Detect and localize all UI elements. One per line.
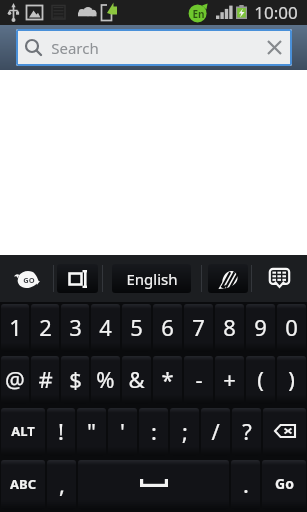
staticText: ! [58, 416, 64, 446]
staticText: ' [120, 416, 125, 446]
button[interactable]: ' [108, 408, 137, 456]
button[interactable]: ) [277, 356, 306, 404]
staticText: 9 [254, 312, 267, 342]
staticText: 7 [192, 312, 205, 342]
button[interactable]: + [215, 356, 244, 404]
staticText: - [195, 364, 203, 394]
button[interactable]: GO Keyboard [0, 255, 53, 302]
button[interactable]: 9 [246, 304, 275, 352]
button[interactable]: @ [1, 356, 29, 404]
button[interactable]: Go [262, 460, 306, 510]
button[interactable]: 8 [215, 304, 244, 352]
staticText: % [96, 364, 115, 394]
button[interactable]: ! [47, 408, 75, 456]
button[interactable]: - [184, 356, 213, 404]
staticText: + [223, 364, 236, 394]
button[interactable]: & [122, 356, 151, 404]
button[interactable]: 2 [31, 304, 59, 352]
staticText: , [59, 469, 65, 499]
button[interactable]: English [112, 264, 191, 293]
staticText: ALT [11, 422, 35, 440]
staticText: Go [275, 474, 294, 493]
button[interactable]: Search [16, 29, 292, 66]
staticText: 5 [130, 312, 143, 342]
button[interactable]: Backspace [263, 408, 306, 456]
button[interactable]: Clear [256, 29, 292, 66]
button[interactable]: 1 [1, 304, 29, 352]
button[interactable]: . [231, 460, 260, 510]
staticText: ) [288, 364, 295, 394]
staticText: 2 [39, 312, 52, 342]
button[interactable]: ? [232, 408, 261, 456]
button[interactable]: : [139, 408, 168, 456]
staticText: . [243, 469, 249, 499]
button[interactable]: * [153, 356, 182, 404]
staticText: @ [5, 364, 25, 394]
button[interactable]: ABC [1, 460, 45, 510]
button[interactable]: Space [78, 460, 229, 510]
staticText: & [128, 364, 145, 394]
staticText: " [87, 416, 96, 446]
staticText: ? [242, 416, 252, 446]
button[interactable]: Handwriting [208, 264, 248, 293]
button[interactable]: / [201, 408, 230, 456]
staticText: / [211, 416, 220, 446]
staticText: En [192, 7, 205, 21]
staticText: * [161, 364, 174, 394]
button[interactable]: 6 [153, 304, 182, 352]
button[interactable]: 0 [277, 304, 306, 352]
button[interactable]: ( [246, 356, 275, 404]
staticText: GO [23, 275, 35, 285]
staticText: $ [69, 364, 82, 394]
staticText: # [38, 364, 53, 394]
staticText: Search [51, 38, 99, 58]
button[interactable]: $ [61, 356, 89, 404]
button[interactable]: , [47, 460, 76, 510]
button[interactable]: Split keyboard [57, 264, 98, 293]
staticText: 10:00 [254, 1, 298, 24]
button[interactable]: ALT [1, 408, 45, 456]
staticText: : [151, 416, 157, 446]
staticText: 8 [223, 312, 236, 342]
button[interactable]: % [91, 356, 120, 404]
button[interactable]: " [77, 408, 106, 456]
button[interactable]: ; [170, 408, 199, 456]
staticText: ( [257, 364, 264, 394]
button[interactable]: Hide keyboard [252, 255, 307, 302]
staticText: English [126, 269, 178, 289]
button[interactable]: 5 [122, 304, 151, 352]
staticText: ; [182, 416, 188, 446]
staticText: 4 [99, 312, 112, 342]
button[interactable]: # [31, 356, 59, 404]
button[interactable]: 4 [91, 304, 120, 352]
button[interactable]: 3 [61, 304, 89, 352]
staticText: 3 [69, 312, 82, 342]
staticText: 1 [9, 312, 22, 342]
button[interactable]: 7 [184, 304, 213, 352]
staticText: 6 [161, 312, 174, 342]
staticText: 0 [285, 312, 298, 342]
staticText: ABC [10, 475, 36, 493]
